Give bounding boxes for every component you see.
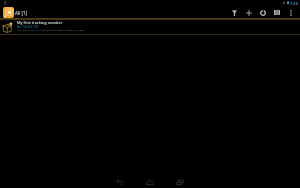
button[interactable]: Add tracking number	[242, 7, 256, 18]
staticText: All [1]	[15, 10, 28, 16]
button[interactable]: My first tracking number	[0, 20, 300, 34]
button[interactable]: More options	[284, 7, 297, 18]
button[interactable]: Change view	[270, 7, 284, 18]
button[interactable]: Refresh	[256, 7, 270, 18]
staticText: 7:48	[290, 1, 298, 6]
staticText: My first tracking number	[17, 20, 63, 25]
button[interactable]: Back	[110, 175, 130, 188]
button[interactable]: Filter	[227, 7, 242, 18]
button[interactable]: Recent apps	[170, 175, 190, 188]
button[interactable]: Home	[140, 175, 160, 188]
staticText: No: 123 456 789	[17, 25, 39, 29]
staticText: 10/18/2011 09:14 AM DELIVERED, PERTH AMB…	[17, 28, 86, 31]
button[interactable]: Parcel tracker	[3, 7, 14, 18]
